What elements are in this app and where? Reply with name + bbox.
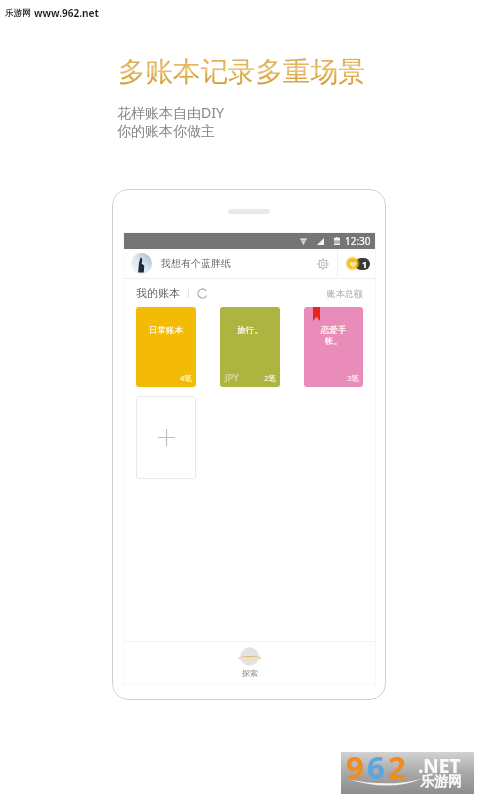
staticText: 9 [346,746,367,788]
button[interactable]: 我想有个蓝胖纸 [123,249,376,278]
button[interactable]: 日常账本 [136,307,196,387]
staticText: www.962.net [34,6,99,20]
button[interactable]: 账本总额 [327,288,363,299]
button[interactable]: 探索 [123,642,376,685]
staticText: 旅行。 [237,325,263,336]
staticText: 2笔 [264,373,276,383]
button[interactable]: Favorites 1 [345,254,370,273]
button[interactable]: Add book [136,396,196,479]
button[interactable]: 我的账本 [136,286,180,300]
staticText: 你的账本你做主 [117,123,215,141]
staticText: 花样账本自由DIY [117,103,224,122]
button[interactable]: Settings [313,254,332,273]
staticText: 4笔 [180,373,192,383]
button[interactable]: 旅行。 [220,307,280,387]
staticText: 乐游网 [5,8,31,19]
button[interactable]: Refresh [197,288,208,299]
staticText: 1 [362,258,368,270]
staticText: 乐游网 [420,773,462,791]
staticText: 日常账本 [149,325,183,336]
staticText: JPY [225,371,239,384]
staticText: 我想有个蓝胖纸 [161,257,231,270]
staticText: 3笔 [347,373,359,383]
staticText: 恋爱手帐。 [313,325,354,347]
staticText: 探索 [242,668,258,678]
staticText: 6 [367,746,388,788]
staticText: .NET [418,753,461,779]
staticText: 12:30 [345,234,371,248]
staticText: 多账本记录多重场景 [118,55,366,90]
button[interactable]: 恋爱手帐。 [304,307,363,387]
staticText: 2 [388,746,409,788]
